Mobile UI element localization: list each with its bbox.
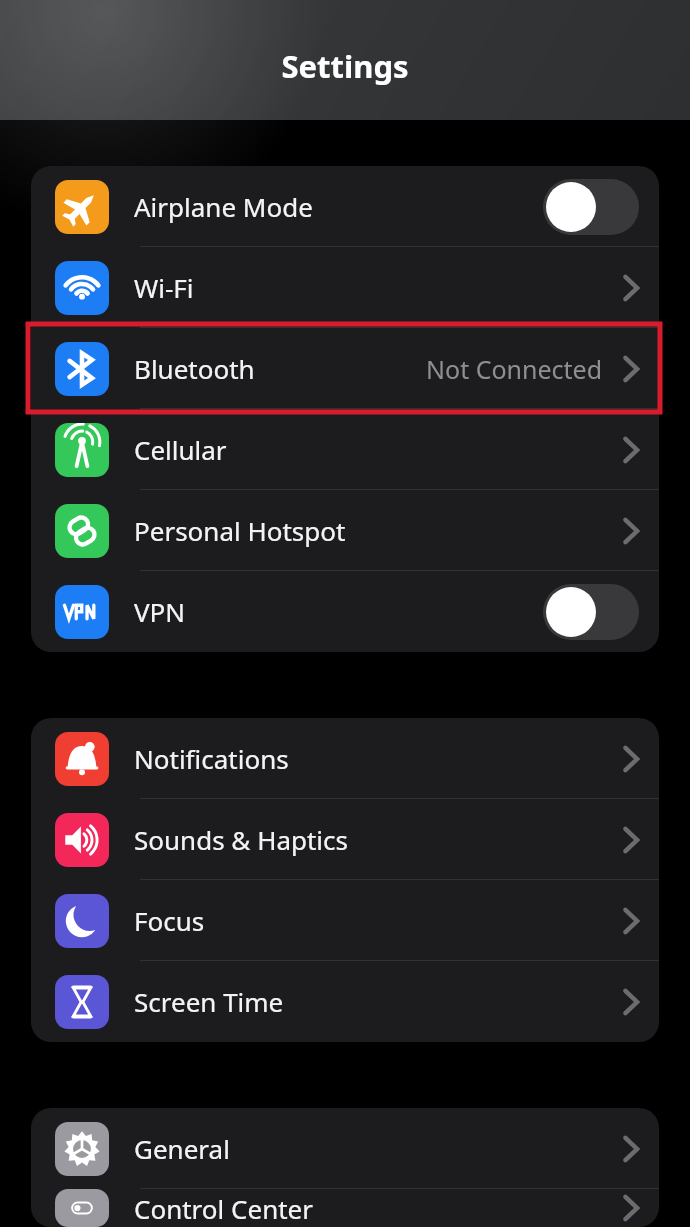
staticText: Screen Time [134, 984, 284, 1019]
staticText: VPN [134, 594, 186, 629]
button[interactable]: Sounds & Haptics [31, 799, 659, 880]
staticText: Not Connected [426, 352, 603, 386]
staticText: Sounds & Haptics [134, 822, 349, 857]
button[interactable]: Airplane Mode [31, 166, 659, 247]
button[interactable]: Personal Hotspot [31, 490, 659, 571]
button[interactable]: VPN switch [543, 584, 639, 640]
staticText: Personal Hotspot [134, 513, 346, 548]
button[interactable]: Bluetooth [31, 328, 659, 409]
staticText: Wi-Fi [134, 270, 194, 305]
staticText: Focus [134, 903, 205, 938]
staticText: Notifications [134, 741, 289, 776]
staticText: Control Center [134, 1191, 313, 1226]
staticText: Bluetooth [134, 351, 255, 386]
button[interactable]: Notifications [31, 718, 659, 799]
button[interactable]: Screen Time [31, 961, 659, 1042]
button[interactable]: VPN [31, 571, 659, 652]
button[interactable]: Cellular [31, 409, 659, 490]
staticText: Airplane Mode [134, 189, 313, 224]
button[interactable]: Control Center [31, 1189, 659, 1227]
button[interactable]: Wi-Fi [31, 247, 659, 328]
staticText: General [134, 1131, 230, 1166]
button[interactable]: Airplane Mode switch [543, 179, 639, 235]
button[interactable]: General [31, 1108, 659, 1189]
button[interactable]: Focus [31, 880, 659, 961]
staticText: Cellular [134, 432, 227, 467]
staticText: Settings [281, 45, 409, 87]
